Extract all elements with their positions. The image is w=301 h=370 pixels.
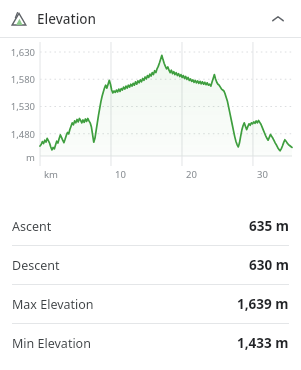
staticText: Max Elevation — [12, 296, 94, 313]
staticText: m — [0, 151, 35, 164]
button[interactable]: Descent — [0, 246, 301, 284]
button[interactable]: Min Elevation — [0, 324, 301, 362]
staticText: 1,480 — [0, 128, 35, 141]
staticText: 1,530 — [0, 100, 35, 113]
staticText: 20 — [186, 168, 197, 181]
button[interactable]: Ascent — [0, 207, 301, 245]
staticText: 630 m — [249, 256, 289, 274]
staticText: Ascent — [12, 218, 52, 235]
staticText: 1,580 — [0, 73, 35, 86]
staticText: Min Elevation — [12, 335, 91, 352]
staticText: 30 — [257, 168, 268, 181]
staticText: 1,639 m — [237, 295, 289, 313]
staticText: 1,433 m — [237, 334, 289, 352]
staticText: km — [44, 168, 58, 181]
staticText: Elevation — [37, 10, 97, 28]
button[interactable]: Elevation — [0, 0, 301, 37]
button[interactable]: Max Elevation — [0, 285, 301, 323]
button[interactable]: Collapse — [267, 8, 289, 30]
staticText: 10 — [115, 168, 126, 181]
staticText: Descent — [12, 257, 60, 274]
staticText: 1,630 — [0, 46, 35, 59]
staticText: 635 m — [249, 217, 289, 235]
